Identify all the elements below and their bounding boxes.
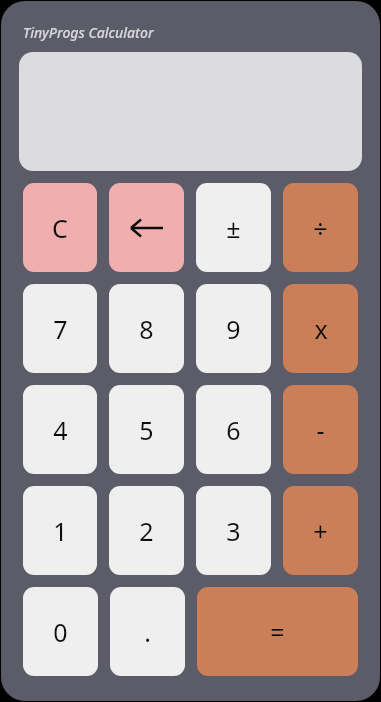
button[interactable]: 7 xyxy=(23,284,97,373)
staticText: 7 xyxy=(53,312,68,346)
button[interactable]: x xyxy=(283,284,358,373)
button[interactable]: ÷ xyxy=(283,183,358,272)
button[interactable]: 4 xyxy=(23,385,97,474)
button[interactable]: 9 xyxy=(196,284,271,373)
staticText: x xyxy=(314,312,328,346)
button[interactable]: 0 xyxy=(23,587,98,676)
staticText: . xyxy=(144,615,151,649)
button[interactable]: 8 xyxy=(109,284,184,373)
button[interactable]: 3 xyxy=(196,486,271,575)
staticText: 5 xyxy=(139,413,154,447)
button[interactable]: - xyxy=(283,385,358,474)
staticText: 2 xyxy=(139,514,154,548)
staticText: 8 xyxy=(139,312,154,346)
staticText: = xyxy=(270,615,285,649)
button[interactable]: 5 xyxy=(109,385,184,474)
staticText: 9 xyxy=(226,312,241,346)
staticText: 4 xyxy=(53,413,68,447)
staticText: ± xyxy=(226,211,241,245)
staticText: TinyProgs Calculator xyxy=(23,23,154,42)
button[interactable]: = xyxy=(197,587,358,676)
button[interactable]: + xyxy=(283,486,358,575)
staticText: ÷ xyxy=(313,211,328,245)
button[interactable]: . xyxy=(110,587,185,676)
staticText: 3 xyxy=(226,514,241,548)
staticText: C xyxy=(52,211,68,245)
button[interactable]: 1 xyxy=(23,486,97,575)
staticText: - xyxy=(316,413,325,447)
button[interactable]: 2 xyxy=(109,486,184,575)
button[interactable]: Backspace xyxy=(109,183,184,272)
staticText: + xyxy=(313,514,328,548)
staticText: 6 xyxy=(226,413,241,447)
staticText: 0 xyxy=(53,615,68,649)
staticText: 1 xyxy=(53,514,68,548)
button[interactable]: 6 xyxy=(196,385,271,474)
button[interactable]: C xyxy=(23,183,97,272)
button[interactable]: ± xyxy=(196,183,271,272)
